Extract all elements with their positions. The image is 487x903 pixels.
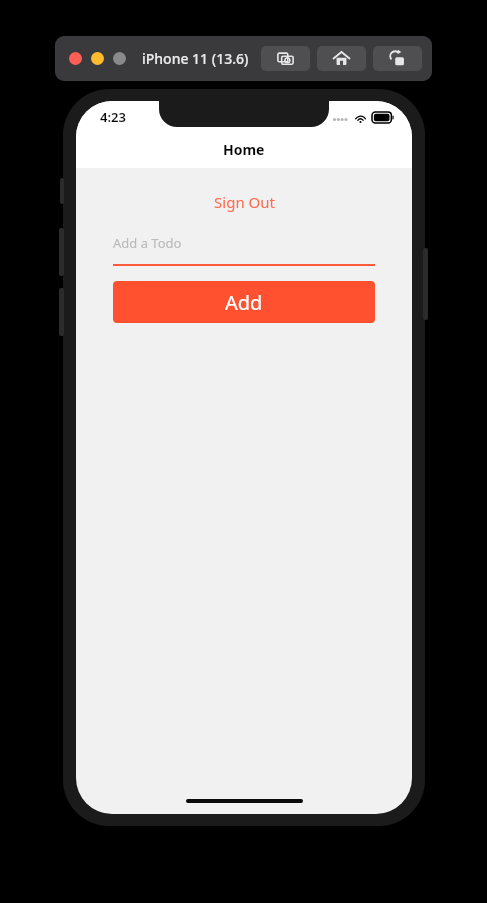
button[interactable]: Home	[317, 46, 366, 71]
button[interactable]: Add	[113, 281, 375, 323]
button[interactable]: Add a Todo	[113, 234, 375, 266]
staticText: Add a Todo	[113, 234, 182, 252]
button[interactable]: Volume up	[59, 228, 64, 276]
staticText: Home	[223, 140, 265, 159]
button[interactable]: Sign Out	[76, 192, 412, 212]
button[interactable]: Volume down	[59, 288, 64, 336]
staticText: Sign Out	[214, 192, 275, 212]
button[interactable]: Rotate	[373, 46, 422, 71]
button[interactable]: Minimize	[91, 52, 104, 65]
button[interactable]: Screenshot	[261, 46, 310, 71]
staticText: iPhone 11 (13.6)	[142, 49, 249, 68]
button[interactable]: Close	[69, 52, 82, 65]
staticText: Add	[225, 289, 263, 316]
button[interactable]: Zoom	[113, 52, 126, 65]
staticText: 4:23	[100, 108, 126, 126]
button[interactable]: Silent switch	[60, 178, 64, 204]
